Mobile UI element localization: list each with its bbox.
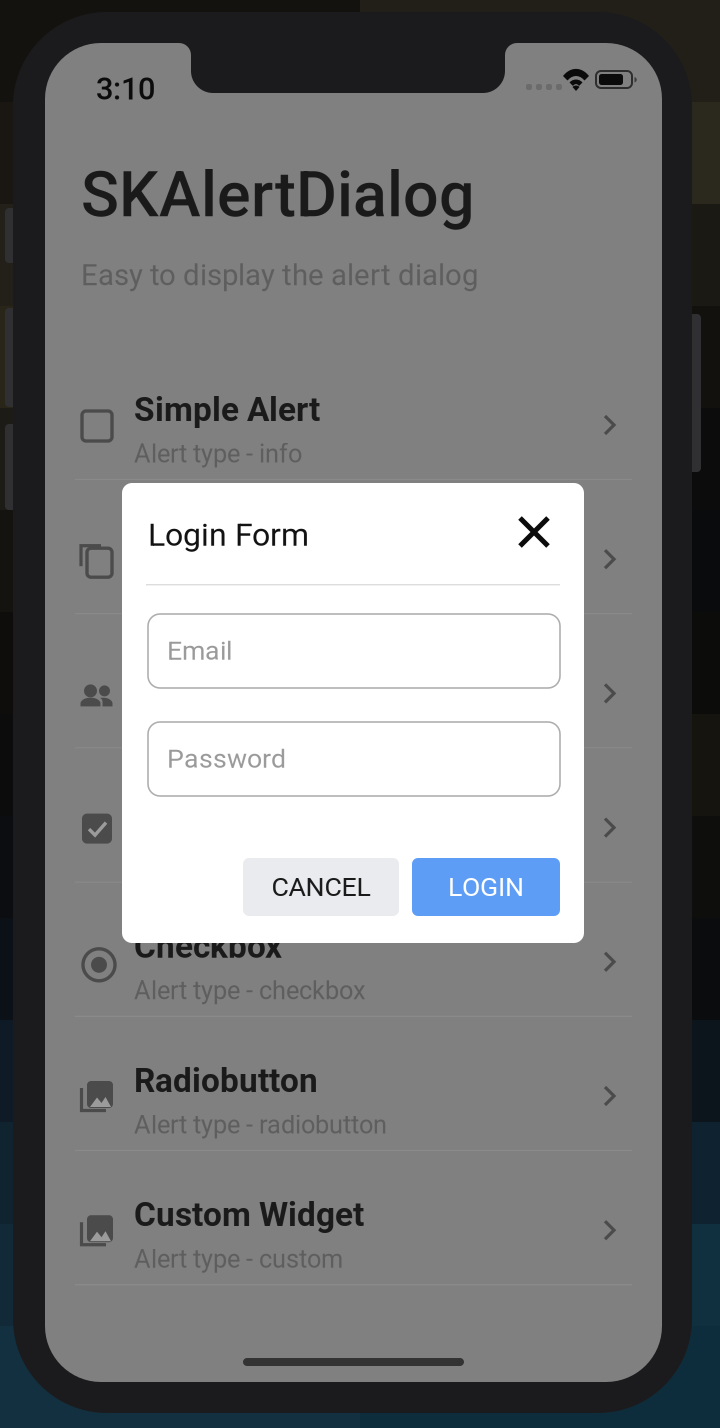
button[interactable]: Simple Alert (45, 346, 662, 480)
button[interactable]: Custom Widget (45, 1151, 662, 1285)
staticText: Alert type - confirm (134, 842, 345, 871)
button[interactable]: CANCEL (243, 858, 399, 916)
staticText: CANCEL (271, 871, 370, 903)
staticText: Alert type - user (134, 707, 308, 737)
staticText: User Alert (134, 658, 284, 697)
button[interactable]: Multi Alert (45, 480, 662, 614)
staticText: Alert type - multi (134, 573, 315, 603)
staticText: Alert type - checkbox (134, 976, 366, 1005)
staticText: LOGIN (448, 871, 524, 903)
staticText: Alert type - custom (134, 1244, 343, 1274)
staticText: 3:10 (96, 71, 155, 107)
staticText: Easy to display the alert dialog (81, 258, 478, 292)
staticText: SKAlertDialog (81, 158, 475, 231)
staticText: Multi Alert (134, 524, 292, 563)
button[interactable]: Close (509, 507, 559, 557)
staticText: Radiobutton (134, 1061, 318, 1100)
button[interactable]: Confirm Alert (45, 749, 662, 883)
button[interactable]: Checkbox (45, 883, 662, 1017)
staticText: Alert type - info (134, 439, 302, 469)
button[interactable]: Radiobutton (45, 1017, 662, 1151)
staticText: Email (167, 635, 232, 666)
button[interactable]: LOGIN (412, 858, 560, 916)
staticText: Confirm Alert (134, 793, 336, 832)
staticText: Custom Widget (134, 1195, 364, 1234)
staticText: Password (167, 743, 286, 774)
staticText: Checkbox (134, 927, 282, 966)
button[interactable]: User Alert (45, 614, 662, 749)
staticText: Alert type - radiobutton (134, 1110, 387, 1140)
staticText: Login Form (148, 516, 309, 553)
staticText: Simple Alert (134, 390, 320, 429)
